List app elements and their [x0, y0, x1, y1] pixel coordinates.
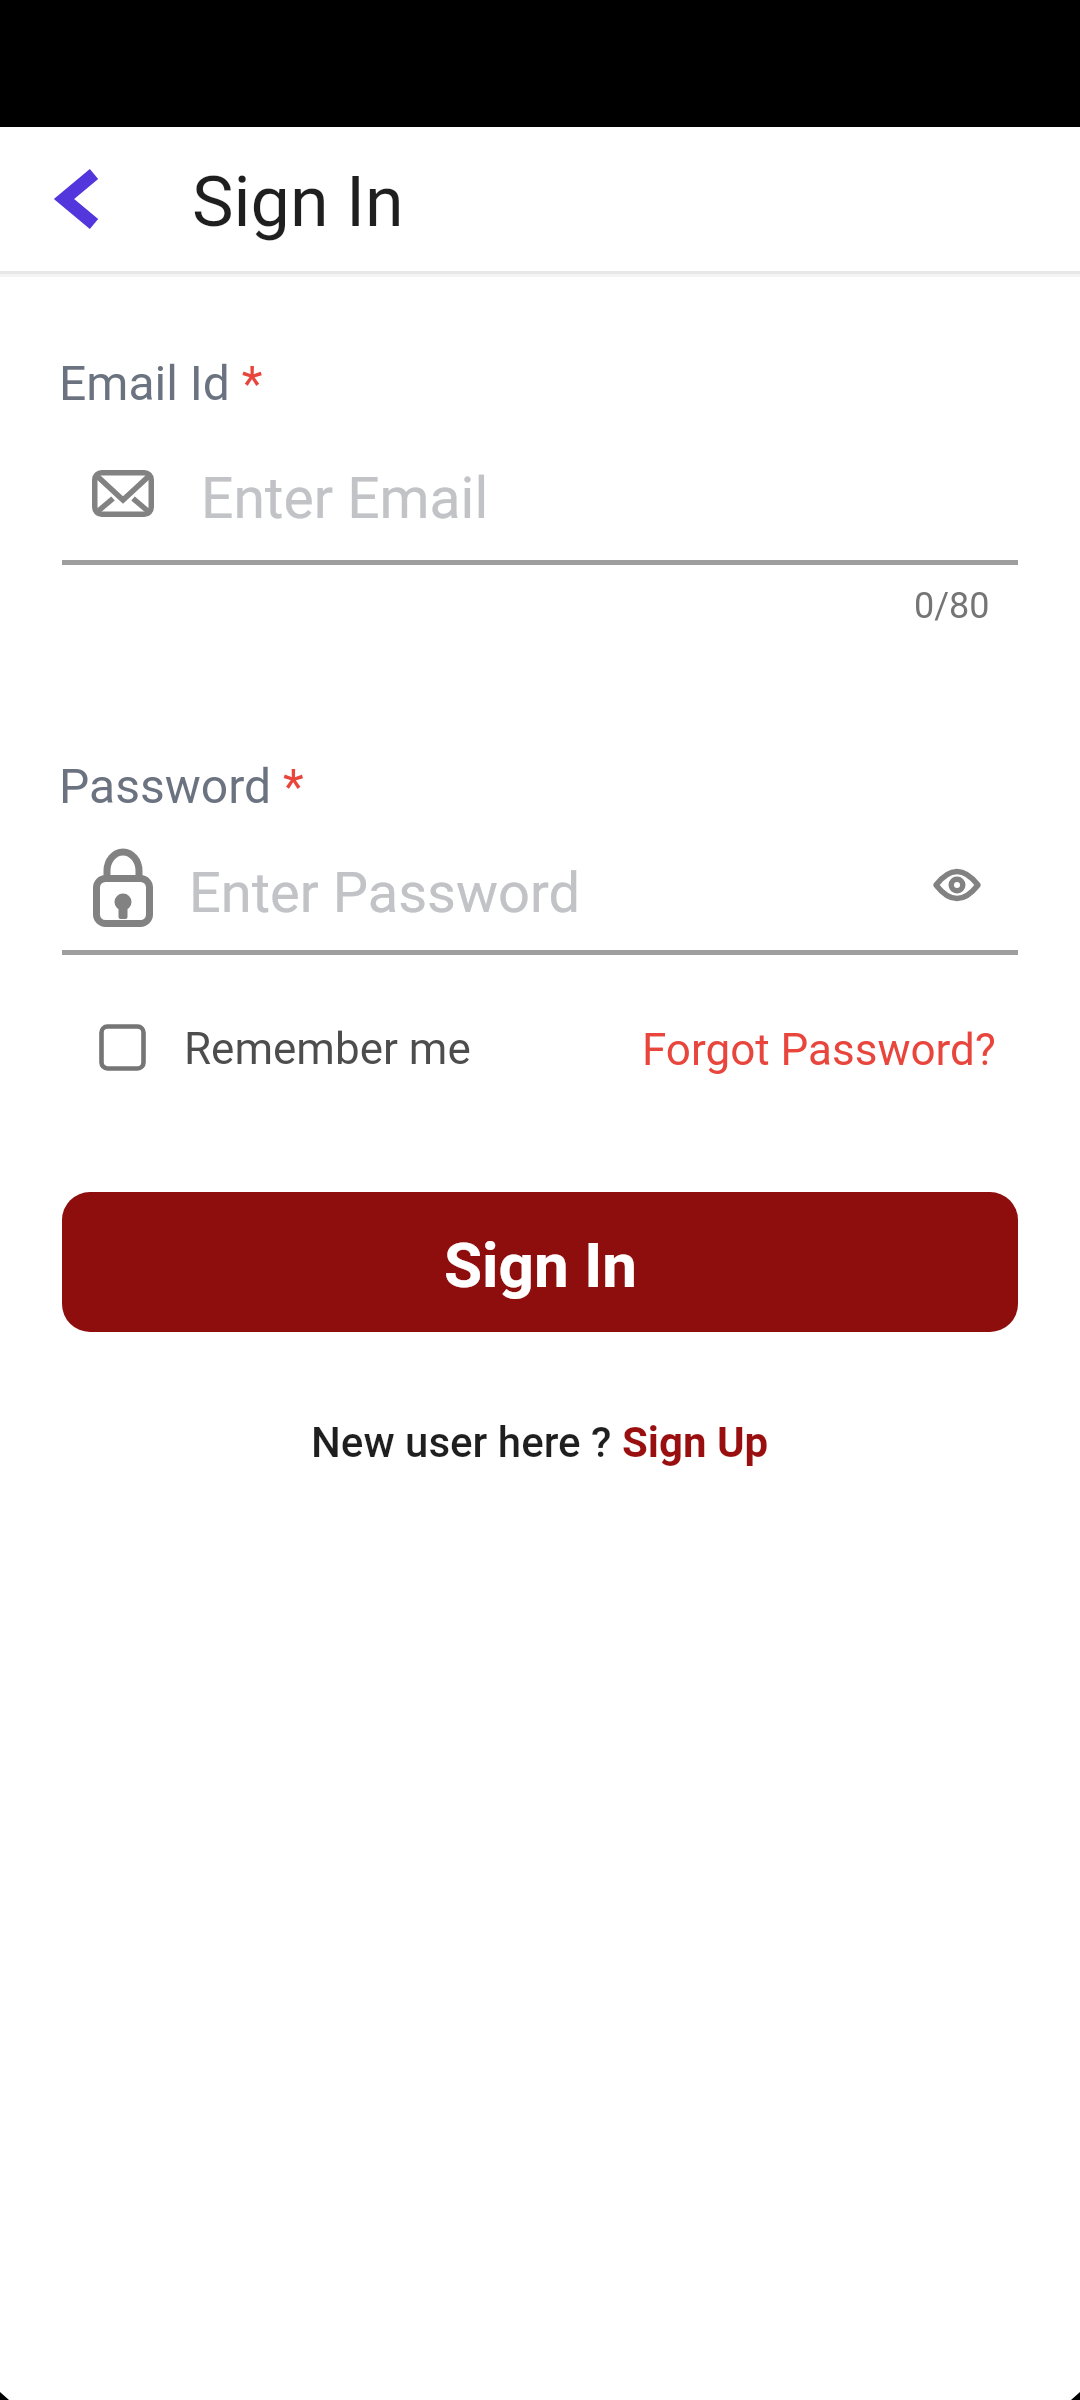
- button[interactable]: Forgot Password?: [642, 1024, 996, 1076]
- staticText: Enter Email: [201, 465, 489, 532]
- button[interactable]: Sign In: [62, 1192, 1018, 1332]
- staticText: Sign In: [192, 161, 404, 243]
- button[interactable]: Sign Up: [622, 1418, 769, 1467]
- staticText: New user here ?: [311, 1418, 622, 1467]
- staticText: Password *: [59, 758, 304, 814]
- button[interactable]: [42, 164, 112, 234]
- button[interactable]: [62, 842, 902, 955]
- staticText: Sign In: [444, 1229, 637, 1302]
- staticText: Enter Password: [189, 860, 580, 926]
- button[interactable]: [917, 850, 997, 920]
- button[interactable]: [99, 1024, 146, 1071]
- staticText: 0/80: [914, 585, 990, 627]
- button[interactable]: [62, 452, 1018, 565]
- staticText: Email Id *: [59, 355, 263, 411]
- staticText: Remember me: [184, 1023, 471, 1075]
